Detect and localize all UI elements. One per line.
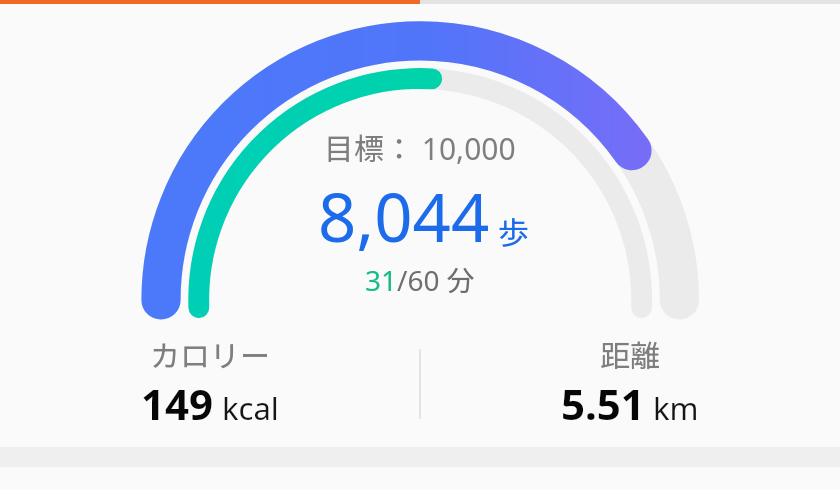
staticText: km (653, 387, 699, 429)
staticText: 8,044 (318, 170, 490, 261)
staticText: 目標： 10,000 (324, 125, 516, 169)
button[interactable]: カロリー (0, 332, 420, 432)
staticText: カロリー (150, 332, 270, 375)
staticText: 距離 (600, 332, 660, 375)
staticText: 歩 (498, 208, 529, 253)
staticText: 31/60 分 (365, 259, 475, 300)
staticText: kcal (222, 387, 279, 429)
staticText: 149 (141, 375, 214, 432)
staticText: 5.51 (561, 375, 645, 432)
button[interactable]: 距離 (420, 332, 840, 432)
